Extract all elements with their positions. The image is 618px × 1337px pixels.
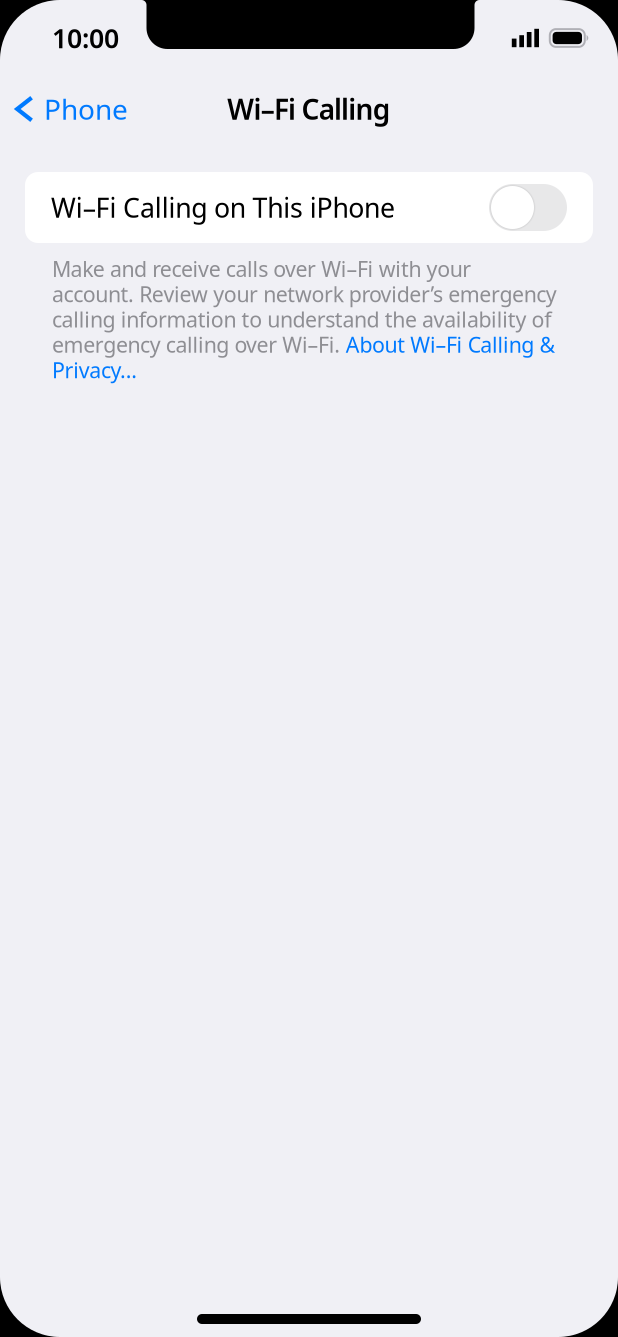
staticText: Phone [44,90,128,128]
staticText: About Wi–Fi Calling & [346,330,555,359]
staticText: Wi–Fi Calling on This iPhone [51,190,395,225]
button[interactable]: Phone [0,81,138,137]
staticText: calling information to understand the av… [52,305,551,333]
staticText: Privacy... [52,356,137,384]
staticText: 10:00 [52,20,119,56]
staticText: Wi–Fi Calling [227,90,391,128]
staticText: account. Review your network provider’s … [52,280,557,308]
button[interactable]: About Wi–Fi Calling & [346,330,555,359]
button[interactable]: Wi–Fi Calling on This iPhone [25,172,593,243]
staticText: emergency calling over Wi–Fi. [52,330,346,359]
button[interactable]: Privacy... [52,356,137,384]
staticText: Make and receive calls over Wi–Fi with y… [52,254,471,283]
